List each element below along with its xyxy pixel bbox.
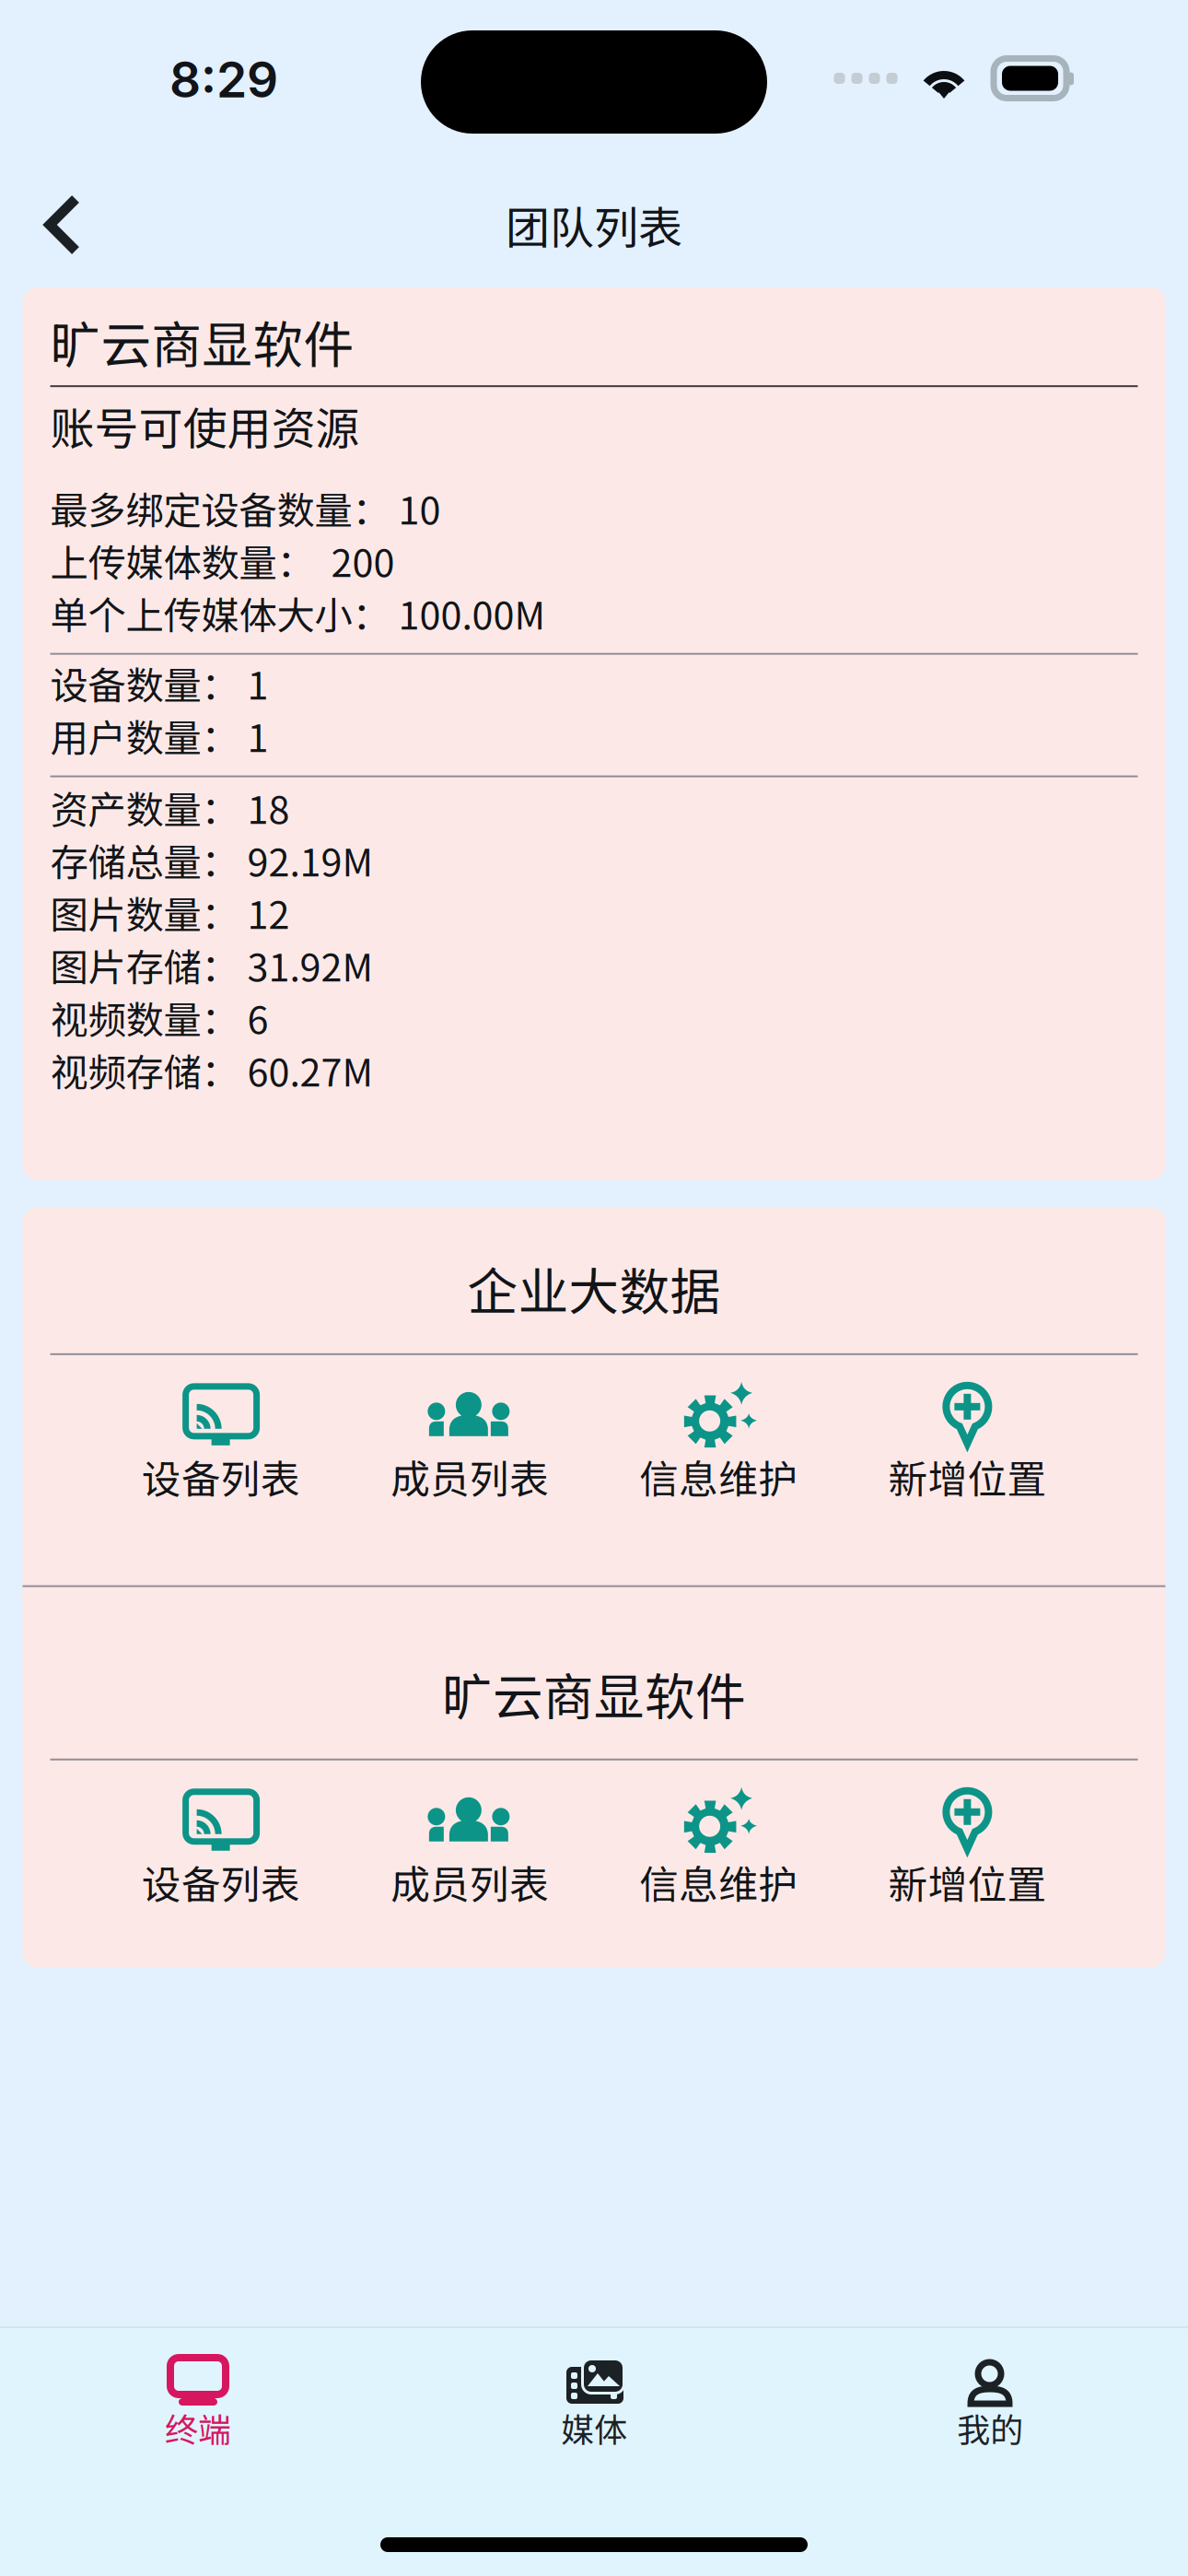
staticText: 存储总量： 92.19M <box>50 832 373 887</box>
button[interactable]: 成员列表 <box>345 1787 594 1910</box>
staticText: 账号可使用资源 <box>50 394 360 458</box>
staticText: 旷云商显软件 <box>442 1657 746 1730</box>
staticText: 新增位置 <box>888 1854 1047 1910</box>
button[interactable]: 设备列表 <box>96 1787 345 1910</box>
button[interactable]: 设备列表 <box>96 1382 345 1505</box>
staticText: 设备列表 <box>141 1854 300 1910</box>
staticText: 新增位置 <box>888 1448 1047 1505</box>
staticText: 8:29 <box>169 50 278 109</box>
staticText: 上传媒体数量： 200 <box>50 533 395 588</box>
staticText: 设备数量： 1 <box>50 655 268 710</box>
staticText: 最多绑定设备数量： 10 <box>50 480 441 535</box>
staticText: 团队列表 <box>506 193 682 257</box>
staticText: 用户数量： 1 <box>50 708 268 763</box>
button[interactable]: 新增位置 <box>843 1787 1092 1910</box>
button[interactable]: 新增位置 <box>843 1382 1092 1505</box>
staticText: 视频数量： 6 <box>50 990 268 1045</box>
staticText: 信息维护 <box>639 1854 798 1910</box>
staticText: 媒体 <box>561 2404 627 2452</box>
staticText: 成员列表 <box>390 1448 549 1505</box>
staticText: 资产数量： 18 <box>50 780 290 835</box>
staticText: 成员列表 <box>390 1854 549 1910</box>
button[interactable]: 信息维护 <box>594 1382 843 1505</box>
staticText: 视频存储： 60.27M <box>50 1042 373 1097</box>
staticText: 旷云商显软件 <box>50 305 354 378</box>
staticText: 设备列表 <box>141 1448 300 1505</box>
staticText: 我的 <box>957 2404 1023 2452</box>
button[interactable]: Back <box>0 172 123 277</box>
staticText: 终端 <box>165 2404 231 2452</box>
button[interactable]: 我的 <box>792 2328 1188 2478</box>
button[interactable]: 成员列表 <box>345 1382 594 1505</box>
staticText: 企业大数据 <box>467 1252 721 1325</box>
staticText: 信息维护 <box>639 1448 798 1505</box>
button[interactable]: 终端 <box>0 2328 396 2478</box>
button[interactable]: 媒体 <box>396 2328 792 2478</box>
staticText: 图片数量： 12 <box>50 885 290 940</box>
staticText: 单个上传媒体大小： 100.00M <box>50 585 546 640</box>
button[interactable]: 信息维护 <box>594 1787 843 1910</box>
staticText: 图片存储： 31.92M <box>50 937 373 992</box>
